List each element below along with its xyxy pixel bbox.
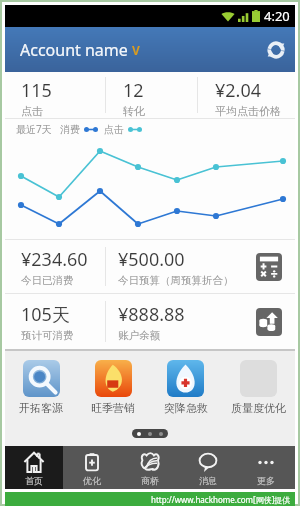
- staticText: 12: [123, 78, 144, 103]
- button[interactable]: ¥500.00: [106, 240, 295, 293]
- button[interactable]: Account name: [5, 27, 148, 72]
- button[interactable]: 首页: [5, 446, 63, 489]
- staticText: Account name: [20, 39, 128, 61]
- staticText: 首页: [25, 475, 43, 486]
- staticText: 115: [21, 78, 52, 103]
- staticText: 账户余额: [118, 329, 160, 342]
- staticText: 更多: [257, 475, 275, 486]
- button[interactable]: Refresh: [257, 27, 295, 72]
- staticText: 突降急救: [164, 401, 208, 415]
- staticText: 质量度优化: [231, 401, 286, 415]
- button[interactable]: 更多: [237, 446, 295, 489]
- staticText: V: [132, 42, 140, 58]
- button[interactable]: Calculator: [256, 253, 282, 281]
- button[interactable]: 突降急救: [149, 360, 222, 415]
- staticText: 开拓客源: [19, 401, 63, 415]
- staticText: 今日已消费: [21, 274, 74, 287]
- button[interactable]: 优化: [63, 446, 121, 489]
- button[interactable]: 商桥: [121, 446, 179, 489]
- staticText: 点击: [21, 104, 43, 118]
- staticText: 预计可消费: [21, 329, 74, 342]
- button[interactable]: ¥888.88: [106, 294, 295, 349]
- button[interactable]: 开拓客源: [5, 360, 77, 415]
- button[interactable]: 115: [5, 72, 105, 118]
- staticText: 点击: [104, 123, 124, 136]
- staticText: 商桥: [141, 475, 159, 486]
- staticText: 105天: [21, 302, 70, 327]
- button[interactable]: 105天: [5, 294, 105, 349]
- button[interactable]: 质量度优化: [222, 360, 295, 415]
- staticText: 转化: [123, 104, 145, 118]
- staticText: ¥500.00: [118, 247, 185, 272]
- staticText: 4:20: [264, 7, 290, 25]
- button[interactable]: 消息: [179, 446, 237, 489]
- staticText: 平均点击价格: [215, 104, 281, 118]
- staticText: ¥2.04: [215, 78, 262, 103]
- button[interactable]: 12: [106, 72, 197, 118]
- staticText: 消费: [60, 123, 80, 136]
- button[interactable]: ¥234.60: [5, 240, 105, 293]
- button[interactable]: ¥2.04: [198, 72, 295, 118]
- staticText: 消息: [199, 475, 217, 486]
- button[interactable]: Recharge: [256, 308, 282, 336]
- staticText: 今日预算（周预算折合）: [118, 274, 234, 287]
- staticText: 最近7天: [16, 122, 52, 136]
- staticText: 旺季营销: [91, 401, 135, 415]
- staticText: ¥888.88: [118, 302, 185, 327]
- staticText: http://www.hackhome.com[网侠]提供: [151, 494, 291, 505]
- button[interactable]: 旺季营销: [77, 360, 149, 415]
- staticText: 优化: [83, 475, 101, 486]
- staticText: ¥234.60: [21, 247, 88, 272]
